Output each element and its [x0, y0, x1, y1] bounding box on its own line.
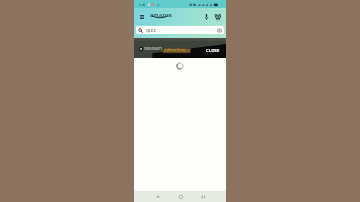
staticText: Celebrate Beauty [165, 48, 186, 51]
button[interactable]: Close ad [206, 48, 220, 54]
staticText: amazon [150, 11, 172, 18]
staticText: SWISS BEAUTY [144, 47, 163, 51]
button[interactable]: Voice search [201, 12, 211, 22]
staticText: CLOSE [206, 48, 220, 54]
button[interactable]: Menu [137, 12, 147, 22]
button[interactable]: quiz [136, 26, 224, 34]
staticText: quiz [146, 27, 156, 34]
button[interactable]: Recent apps [153, 192, 162, 201]
button[interactable]: Shopping cart [213, 12, 223, 22]
button[interactable]: Back [198, 192, 207, 201]
button[interactable]: Home [176, 192, 185, 201]
staticText: .in [168, 14, 172, 18]
